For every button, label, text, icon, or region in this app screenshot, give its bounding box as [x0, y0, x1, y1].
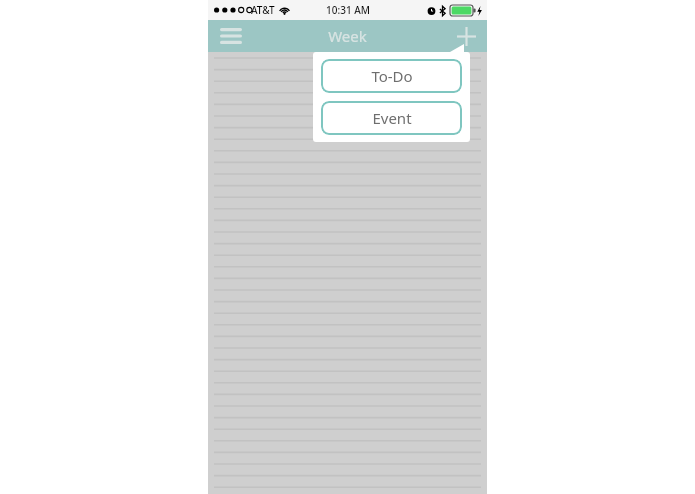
- button[interactable]: Event: [321, 101, 462, 135]
- staticText: To-Do: [371, 66, 413, 86]
- staticText: AT&T: [251, 3, 275, 17]
- button[interactable]: Add: [451, 22, 481, 50]
- staticText: Week: [328, 26, 367, 46]
- staticText: 10:31 AM: [326, 3, 370, 17]
- staticText: Event: [372, 108, 412, 128]
- button[interactable]: To-Do: [321, 59, 462, 93]
- button[interactable]: Menu: [214, 22, 248, 50]
